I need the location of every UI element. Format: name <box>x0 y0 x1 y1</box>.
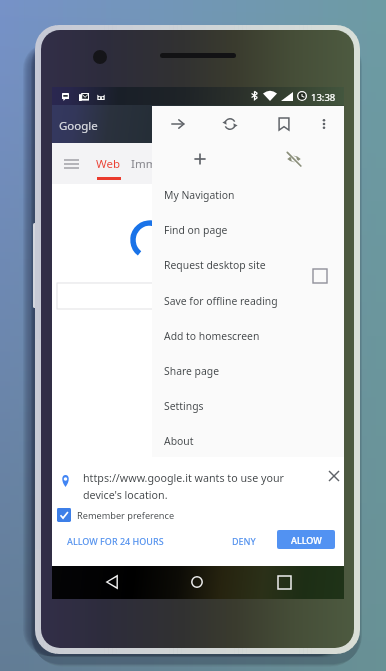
staticText: Settings <box>164 399 204 413</box>
button[interactable]: About <box>152 423 344 458</box>
button[interactable]: Imm <box>126 145 162 183</box>
staticText: Google <box>59 118 98 134</box>
staticText: DENY <box>232 535 256 547</box>
staticText: Save for offline reading <box>164 294 278 308</box>
button[interactable]: Bookmark <box>271 111 297 137</box>
button[interactable]: Add to homescreen <box>152 318 344 353</box>
button[interactable]: Close <box>325 467 343 485</box>
staticText: Imm <box>131 156 157 172</box>
button[interactable]: ALLOW <box>277 530 335 549</box>
button[interactable]: New incognito tab <box>281 146 307 172</box>
button[interactable]: ALLOW FOR 24 HOURS <box>61 531 183 550</box>
button[interactable]: Settings <box>152 388 344 423</box>
button[interactable]: Back <box>99 569 125 595</box>
staticText: My Navigation <box>164 188 235 202</box>
button[interactable]: New tab <box>187 146 213 172</box>
button[interactable]: Recent apps <box>271 569 297 595</box>
staticText: device's location. <box>83 488 168 503</box>
staticText: Remember preference <box>77 509 175 522</box>
staticText: Share page <box>164 364 220 378</box>
button[interactable]: Web <box>90 145 126 183</box>
button[interactable]: Save for offline reading <box>152 283 344 318</box>
button[interactable]: Remember preference <box>52 506 192 524</box>
button[interactable]: My Navigation <box>152 177 344 212</box>
staticText: 13:38 <box>311 91 336 104</box>
button[interactable]: Request desktop site <box>152 247 344 282</box>
staticText: ALLOW <box>291 534 322 546</box>
button[interactable]: Forward <box>165 111 191 137</box>
staticText: Find on page <box>164 223 228 237</box>
staticText: About <box>164 434 194 448</box>
button[interactable]: Find on page <box>152 212 344 247</box>
staticText: https://www.google.it wants to use your <box>83 471 284 486</box>
staticText: Add to homescreen <box>164 329 260 343</box>
button[interactable]: DENY <box>225 531 263 550</box>
button[interactable]: Menu <box>58 151 84 177</box>
button[interactable]: Home <box>184 569 210 595</box>
staticText: ALLOW FOR 24 HOURS <box>67 535 164 547</box>
button[interactable]: Refresh <box>217 111 243 137</box>
staticText: Web <box>96 156 121 172</box>
button[interactable]: More options <box>311 111 337 137</box>
staticText: Request desktop site <box>164 258 266 272</box>
button[interactable]: Share page <box>152 353 344 388</box>
